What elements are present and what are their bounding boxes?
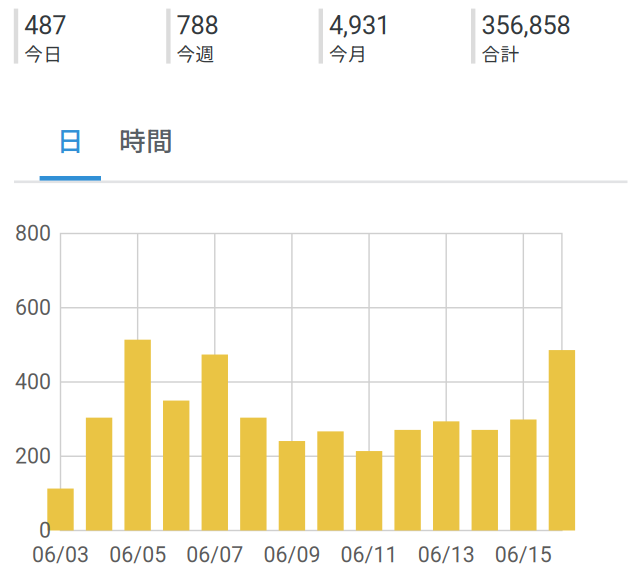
staticText: 合計 — [481, 40, 519, 67]
staticText: 06/15 — [495, 542, 552, 565]
staticText: 487 — [24, 11, 66, 40]
staticText: 0 — [39, 518, 51, 543]
staticText: 日 — [57, 120, 84, 159]
staticText: 06/03 — [32, 542, 89, 565]
staticText: 06/05 — [109, 542, 166, 565]
staticText: 今日 — [24, 40, 62, 67]
staticText: 4,931 — [329, 11, 390, 40]
staticText: 600 — [15, 295, 51, 320]
staticText: 06/07 — [186, 542, 243, 565]
button[interactable]: 日 — [40, 108, 101, 170]
staticText: 今週 — [177, 40, 215, 67]
button[interactable]: 時間 — [101, 108, 191, 170]
staticText: 06/11 — [341, 542, 398, 565]
staticText: 時間 — [119, 120, 173, 159]
staticText: 800 — [15, 221, 51, 246]
staticText: 400 — [15, 369, 51, 394]
staticText: 200 — [15, 444, 51, 469]
staticText: 06/09 — [263, 542, 320, 565]
staticText: 356,858 — [481, 11, 570, 40]
staticText: 788 — [177, 11, 219, 40]
staticText: 今月 — [329, 40, 367, 67]
staticText: 06/13 — [418, 542, 475, 565]
